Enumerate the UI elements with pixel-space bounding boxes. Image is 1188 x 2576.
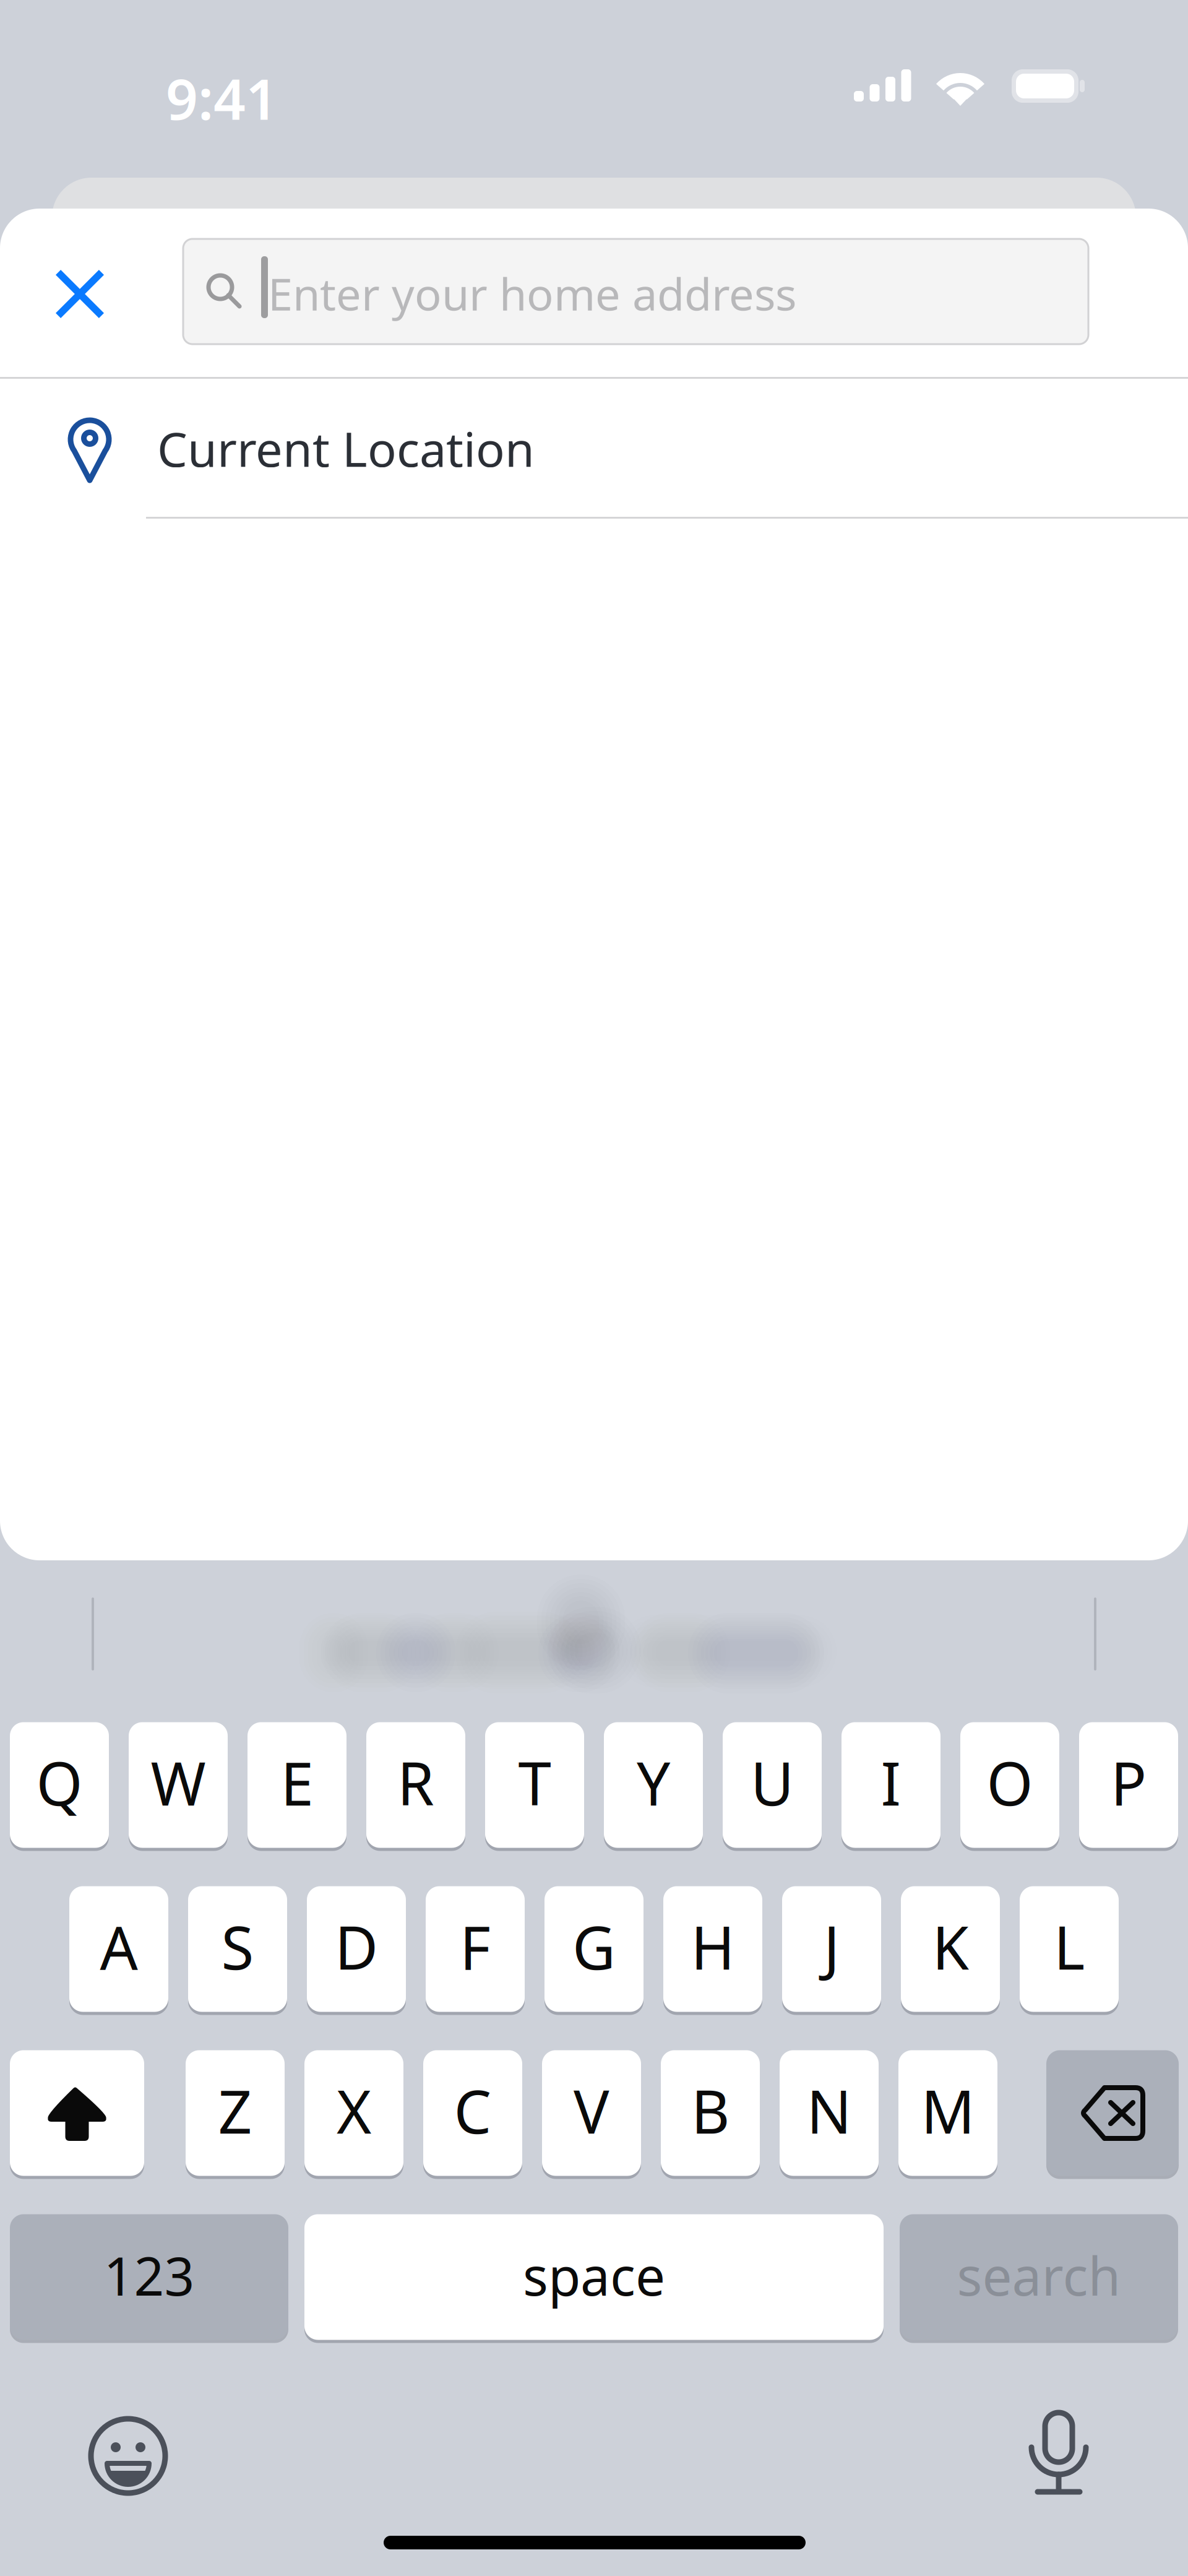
button[interactable]: Enter your home address [183,239,1088,344]
staticText: H [691,1907,735,1986]
button[interactable]: S [188,1885,287,2013]
button[interactable]: L [1020,1885,1119,2013]
button[interactable]: Y [604,1721,703,1849]
button[interactable]: X [304,2049,403,2177]
staticText: search [957,2240,1121,2310]
staticText: P [1111,1743,1147,1822]
staticText: Y [637,1743,670,1822]
staticText: Z [218,2071,252,2150]
staticText: C [454,2071,492,2150]
button[interactable]: Delete [1046,2049,1179,2177]
button[interactable]: N [780,2049,879,2177]
staticText: K [932,1907,969,1986]
button[interactable]: Shift [10,2049,144,2177]
button[interactable]: P [1079,1721,1178,1849]
button[interactable]: space [304,2213,884,2341]
staticText: U [751,1743,794,1822]
button[interactable]: D [307,1885,406,2013]
button[interactable]: Z [186,2049,285,2177]
button[interactable]: I [841,1721,940,1849]
button[interactable]: Current Location [0,379,1188,519]
staticText: 123 [104,2240,195,2310]
staticText: M [921,2071,975,2150]
staticText: A [100,1907,138,1986]
staticText: R [397,1743,434,1822]
staticText: J [824,1907,840,1986]
button[interactable]: search [900,2213,1178,2341]
staticText: V [574,2071,609,2150]
button[interactable]: 123 [10,2213,288,2341]
button[interactable]: Q [10,1721,109,1849]
button[interactable]: V [542,2049,641,2177]
button[interactable]: Emoji keyboard [87,2415,169,2497]
button[interactable]: T [485,1721,584,1849]
staticText: F [460,1907,491,1986]
button[interactable]: G [544,1885,643,2013]
button[interactable]: H [663,1885,762,2013]
button[interactable]: J [782,1885,881,2013]
button[interactable]: A [69,1885,168,2013]
button[interactable]: M [898,2049,997,2177]
staticText: Current Location [157,417,535,480]
staticText: I [881,1743,901,1822]
staticText: N [807,2071,852,2150]
button[interactable]: U [723,1721,822,1849]
button[interactable]: Close [32,246,128,342]
button[interactable]: W [129,1721,228,1849]
staticText: Enter your home address [268,264,796,323]
button[interactable]: Dictate [1027,2409,1091,2499]
staticText: G [572,1907,616,1986]
staticText: E [281,1743,313,1822]
button[interactable]: E [247,1721,346,1849]
staticText: D [335,1907,378,1986]
staticText: X [337,2071,371,2150]
staticText: T [518,1743,551,1822]
staticText: 9:41 [166,61,278,135]
button[interactable]: C [423,2049,522,2177]
staticText: L [1054,1907,1085,1986]
button[interactable]: F [426,1885,525,2013]
staticText: space [523,2240,665,2310]
button[interactable]: R [366,1721,465,1849]
staticText: Q [36,1743,83,1822]
button[interactable]: O [960,1721,1059,1849]
staticText: O [987,1743,1033,1822]
staticText: S [221,1907,254,1986]
staticText: B [691,2071,730,2150]
button[interactable]: K [901,1885,1000,2013]
staticText: W [151,1743,206,1822]
button[interactable]: B [661,2049,760,2177]
